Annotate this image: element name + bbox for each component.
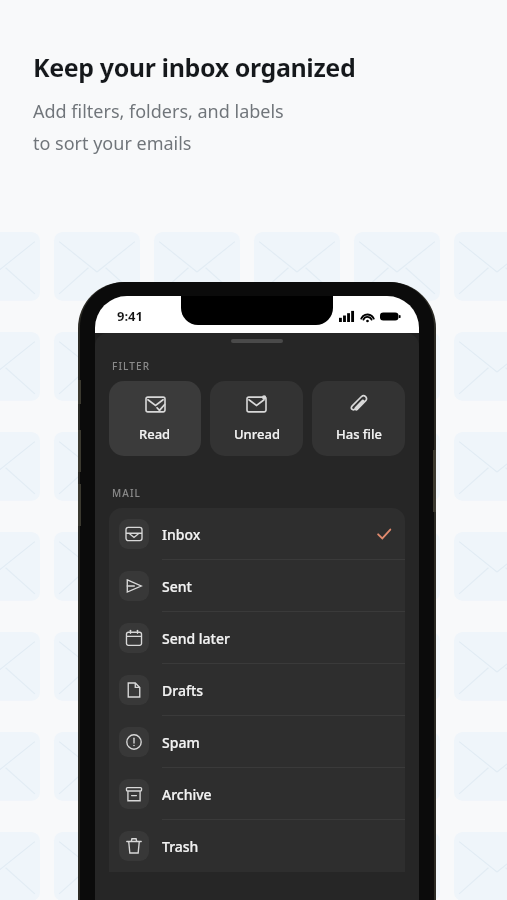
staticText: Has file (336, 425, 382, 443)
staticText: Keep your inbox organized (33, 50, 356, 84)
staticText: Send later (162, 629, 230, 648)
button[interactable]: Read (109, 381, 201, 456)
staticText: 9:41 (117, 307, 143, 325)
button[interactable]: Send later (109, 612, 405, 664)
button[interactable]: Archive (109, 768, 405, 820)
staticText: MAIL (112, 486, 142, 500)
staticText: Unread (234, 425, 280, 443)
staticText: Drafts (162, 681, 204, 700)
button[interactable]: Trash (109, 820, 405, 872)
button[interactable]: Sent (109, 560, 405, 612)
staticText: Archive (162, 785, 212, 804)
staticText: Spam (162, 733, 200, 752)
button[interactable]: Inbox (109, 508, 405, 560)
staticText: Trash (162, 837, 199, 856)
staticText: Sent (162, 577, 192, 596)
button[interactable]: Drafts (109, 664, 405, 716)
staticText: FILTER (112, 359, 151, 373)
button[interactable]: Spam (109, 716, 405, 768)
button[interactable]: Has file (312, 381, 405, 456)
staticText: Add filters, folders, and labels (33, 99, 284, 124)
button[interactable]: Unread (210, 381, 303, 456)
staticText: Inbox (162, 525, 201, 544)
staticText: to sort your emails (33, 131, 192, 156)
staticText: Read (139, 425, 171, 443)
